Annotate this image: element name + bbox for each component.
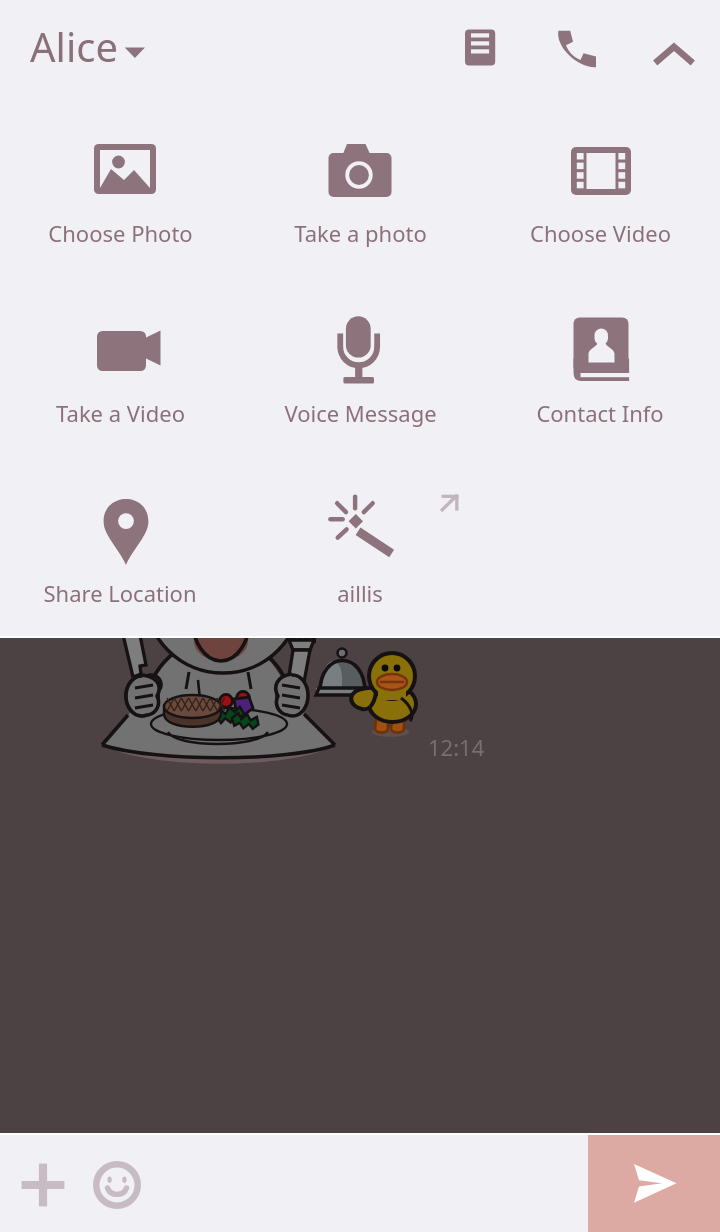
- button[interactable]: Notes: [449, 14, 511, 82]
- staticText: Share Location: [43, 578, 197, 608]
- staticText: Alice: [30, 19, 118, 73]
- button[interactable]: Open aillis: [430, 486, 470, 526]
- button[interactable]: Collapse keyboard: [640, 14, 708, 82]
- button[interactable]: Emoji: [83, 1151, 150, 1218]
- staticText: Voice Message: [284, 398, 437, 428]
- button[interactable]: Add attachment: [9, 1151, 77, 1219]
- staticText: Take a Video: [56, 398, 185, 428]
- staticText: Take a photo: [294, 218, 427, 248]
- staticText: aillis: [337, 578, 383, 608]
- button[interactable]: Call: [542, 14, 612, 82]
- staticText: 12:14: [428, 732, 485, 762]
- button[interactable]: Share Location: [10, 468, 230, 602]
- button[interactable]: Choose Video: [490, 107, 710, 241]
- staticText: Contact Info: [536, 398, 664, 428]
- button[interactable]: Choose Photo: [10, 105, 230, 239]
- staticText: Choose Photo: [48, 218, 193, 248]
- button[interactable]: Contact Info: [490, 285, 710, 419]
- staticText: Choose Video: [530, 218, 671, 248]
- button[interactable]: Voice Message: [250, 285, 470, 419]
- button[interactable]: Take a photo: [250, 108, 470, 242]
- button[interactable]: Send: [588, 1135, 720, 1232]
- button[interactable]: Take a Video: [10, 287, 230, 421]
- button[interactable]: Alice: [18, 12, 162, 82]
- button[interactable]: aillis: [250, 466, 470, 600]
